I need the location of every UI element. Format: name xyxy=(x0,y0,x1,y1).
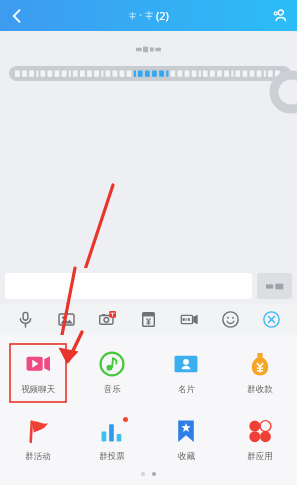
button[interactable]: Camera xyxy=(92,304,123,335)
staticText: 群活动 xyxy=(25,451,51,462)
button[interactable]: 音乐 xyxy=(84,346,140,400)
button[interactable]: Group members xyxy=(263,0,297,31)
button[interactable]: 群活动 xyxy=(10,413,66,467)
staticText: 音乐 xyxy=(104,384,121,395)
button[interactable]: 视频聊天 xyxy=(10,346,66,400)
staticText: 群投票 xyxy=(99,451,125,462)
staticText: 收藏 xyxy=(178,451,195,462)
button[interactable]: 收藏 xyxy=(158,413,214,467)
staticText: 群收款 xyxy=(247,384,273,395)
button[interactable]: Voice message xyxy=(10,304,41,335)
button[interactable]: Close panel xyxy=(256,304,287,335)
button[interactable]: 群收款 xyxy=(232,346,288,400)
staticText: 群应用 xyxy=(247,451,273,462)
staticText: 名片 xyxy=(178,384,195,395)
button[interactable] xyxy=(5,273,252,299)
button[interactable]: 名片 xyxy=(158,346,214,400)
button[interactable]: Emoji xyxy=(215,304,246,335)
button[interactable]: 群投票 xyxy=(84,413,140,467)
staticText: (2) xyxy=(156,8,169,23)
button[interactable]: GIF xyxy=(174,304,205,335)
button[interactable]: Photo xyxy=(51,304,82,335)
staticText: 视频聊天 xyxy=(21,384,55,395)
button[interactable]: Back xyxy=(0,0,34,31)
button[interactable]: 群应用 xyxy=(232,413,288,467)
button[interactable]: Red packet xyxy=(133,304,164,335)
button[interactable] xyxy=(257,273,292,299)
button[interactable] xyxy=(9,66,291,81)
